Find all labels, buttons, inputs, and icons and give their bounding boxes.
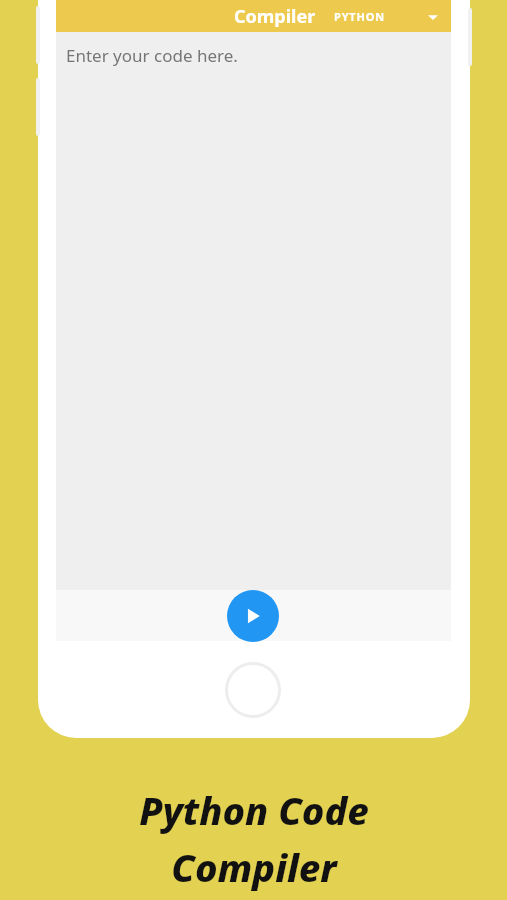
button[interactable]: Enter your code here. <box>56 32 451 590</box>
button[interactable]: Compiler <box>56 4 316 29</box>
staticText: Python Code <box>139 784 369 836</box>
button[interactable]: Home <box>225 662 281 718</box>
staticText: Compiler <box>234 4 316 29</box>
staticText: Enter your code here. <box>66 44 238 67</box>
staticText: Compiler <box>171 841 337 893</box>
staticText: PYTHON <box>334 9 385 24</box>
button[interactable]: Run code <box>227 590 279 642</box>
button[interactable]: PYTHON <box>316 9 451 24</box>
